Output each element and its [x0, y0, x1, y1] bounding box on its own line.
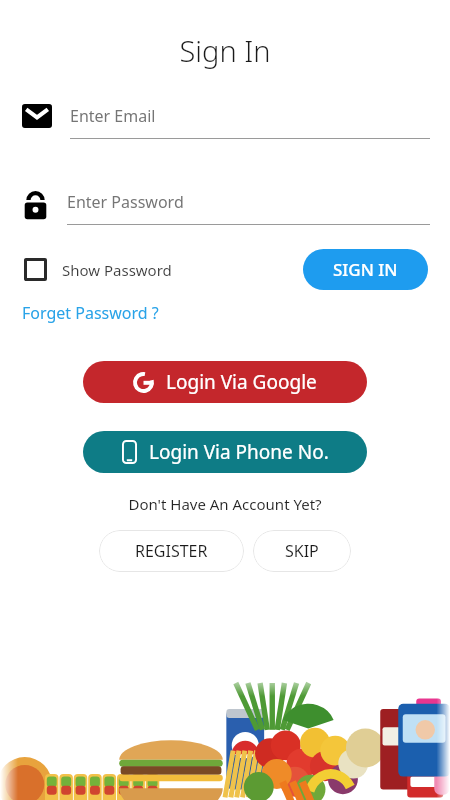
button[interactable]: Login Via Phone No.	[83, 431, 367, 473]
button[interactable]: SKIP	[253, 530, 351, 572]
button[interactable]: Show Password	[24, 254, 172, 285]
staticText: Sign In	[179, 31, 271, 70]
staticText: SKIP	[285, 540, 319, 562]
button[interactable]: Enter Password	[67, 186, 430, 218]
staticText: SIGN IN	[333, 258, 398, 281]
button[interactable]: REGISTER	[99, 530, 244, 572]
staticText: Show Password	[62, 260, 172, 280]
button[interactable]: Enter Email	[70, 100, 430, 132]
button[interactable]: Forget Password ?	[22, 299, 159, 327]
button[interactable]: Login Via Google	[83, 361, 367, 403]
staticText: Don't Have An Account Yet?	[0, 494, 450, 514]
button[interactable]: SIGN IN	[303, 249, 428, 290]
staticText: Login Via Google	[166, 369, 317, 395]
staticText: Enter Password	[67, 191, 184, 213]
staticText: Enter Email	[70, 105, 156, 127]
staticText: Forget Password ?	[22, 302, 159, 324]
staticText: REGISTER	[135, 540, 208, 562]
staticText: Login Via Phone No.	[149, 439, 329, 465]
